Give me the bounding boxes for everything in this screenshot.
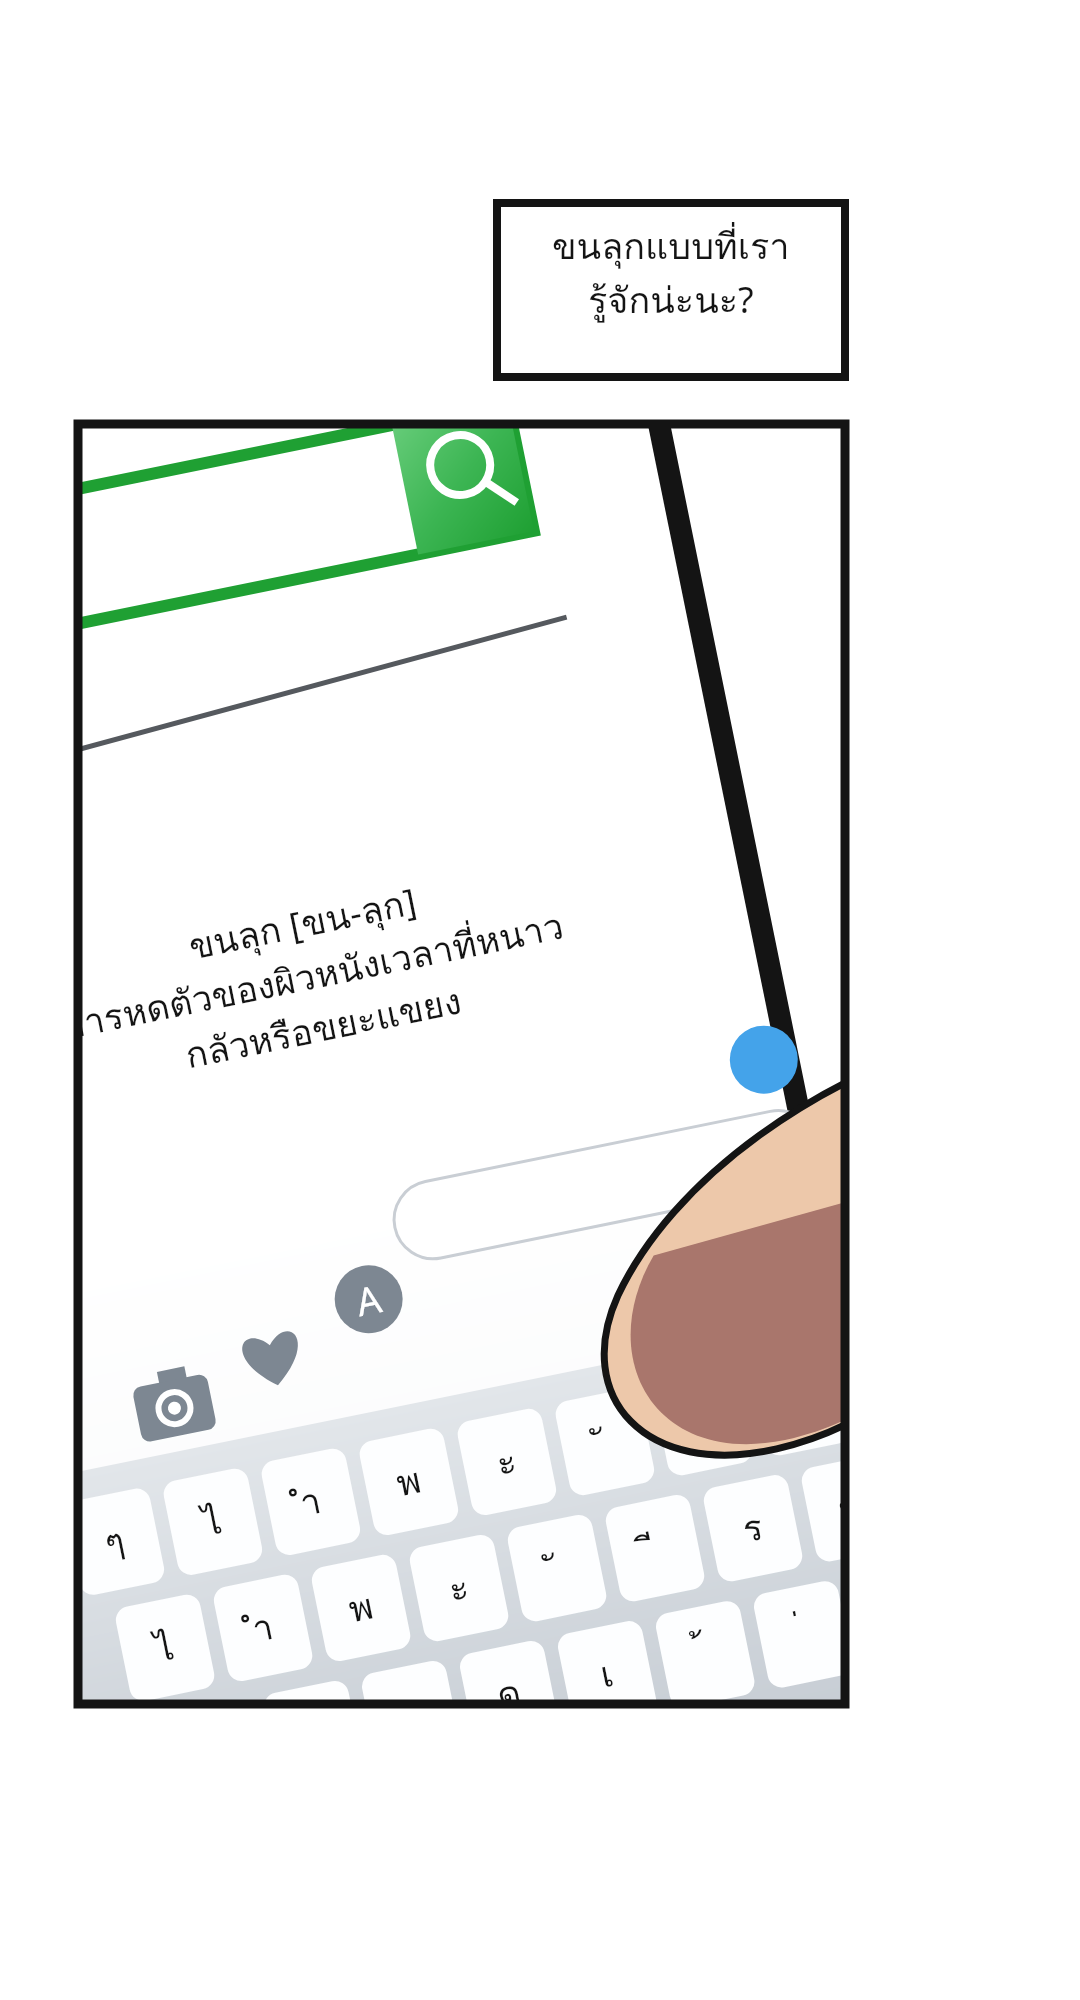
button[interactable]: Comic panel: phone dictionary search [0, 0, 1080, 2000]
